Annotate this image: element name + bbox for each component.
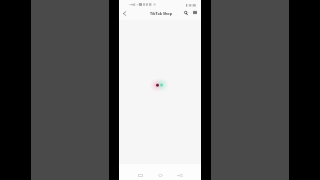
staticText: TikTok Shop: [150, 11, 172, 16]
button[interactable]: Menu: [190, 8, 199, 17]
button[interactable]: Back: [119, 8, 129, 18]
button[interactable]: Recents: [135, 170, 145, 180]
button[interactable]: Back: [175, 170, 185, 180]
button[interactable]: Home: [155, 170, 165, 180]
button[interactable]: Search: [181, 8, 190, 17]
